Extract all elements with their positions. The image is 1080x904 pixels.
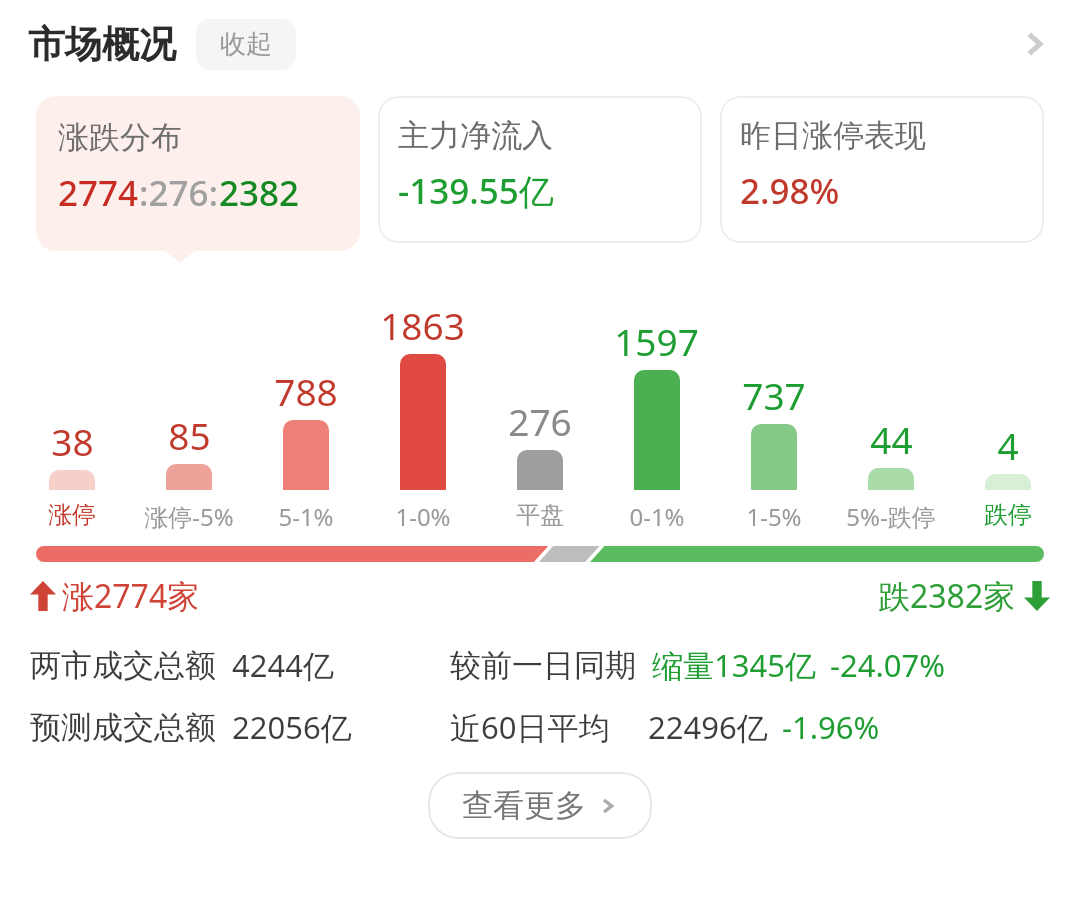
staticText: 4244亿 [232,644,334,686]
staticText: 22056亿 [232,706,352,748]
staticText: 平盘 [516,500,564,530]
staticText: 2.98% [740,167,840,215]
button[interactable]: 查看更多 [428,772,652,839]
staticText: :276: [139,169,219,217]
staticText: 较前一日同期 [450,646,636,685]
staticText: 2382 [219,169,300,217]
staticText: 44 [870,414,913,464]
staticText: 缩量1345亿 [652,644,816,686]
staticText: 1-5% [746,500,802,533]
staticText: 两市成交总额 [30,646,216,685]
staticText: 85 [168,410,211,460]
staticText: 1597 [614,316,699,366]
staticText: 收起 [220,28,272,61]
staticText: 查看更多 [462,786,586,825]
staticText: 近60日平均 [450,706,610,748]
button[interactable]: 收起 [196,19,296,70]
staticText: 预测成交总额 [30,708,216,747]
staticText: 38 [51,416,94,466]
staticText: 788 [274,366,338,416]
staticText: -139.55亿 [398,167,554,215]
button[interactable]: 市场概况 [0,0,1080,88]
staticText: 主力净流入 [398,116,553,155]
staticText: -24.07% [830,644,945,686]
staticText: 涨停-5% [144,500,234,533]
staticText: -1.96% [782,706,880,748]
staticText: 跌2382家 [878,574,1016,618]
staticText: 涨停 [48,500,96,530]
staticText: 涨2774家 [62,574,200,618]
staticText: 市场概况 [28,21,176,68]
button[interactable]: More [1010,20,1058,68]
button[interactable]: 昨日涨停表现 [720,96,1044,243]
staticText: 5%-跌停 [846,500,936,533]
staticText: 涨跌分布 [58,118,182,157]
staticText: 跌停 [984,500,1032,530]
staticText: 2774 [58,169,139,217]
staticText: 4 [997,420,1019,470]
staticText: 5-1% [278,500,334,533]
button[interactable]: 主力净流入 [378,96,702,243]
staticText: 1863 [380,300,465,350]
button[interactable]: 涨跌分布 [36,96,360,251]
staticText: 22496亿 [648,706,768,748]
staticText: 276 [508,396,572,446]
staticText: 737 [742,370,806,420]
staticText: 1-0% [395,500,451,533]
staticText: 0-1% [629,500,685,533]
staticText: 昨日涨停表现 [740,116,926,155]
